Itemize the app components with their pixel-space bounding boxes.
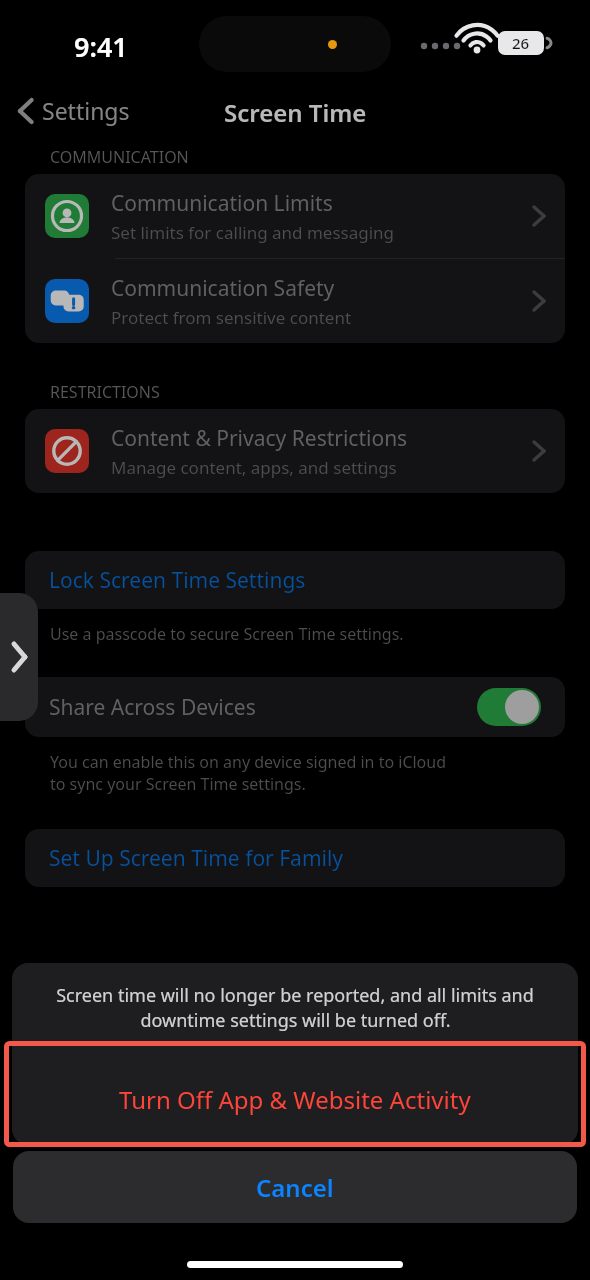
staticText: 9:41 [74,28,128,65]
staticText: downtime settings will be turned off. [140,1008,451,1033]
staticText: Communication Limits [111,189,333,218]
staticText: Settings [42,95,130,126]
staticText: Protect from sensitive content [111,306,352,329]
staticText: RESTRICTIONS [50,381,160,403]
staticText: You can enable this on any device signed… [50,751,447,773]
staticText: Communication Safety [111,274,335,303]
button[interactable]: Lock Screen Time Settings [25,551,565,609]
staticText: Set Up Screen Time for Family [49,844,344,873]
button[interactable]: Content & Privacy Restrictions [25,409,565,493]
button[interactable]: Share Across Devices [25,677,565,737]
button[interactable]: Set Up Screen Time for Family [25,829,565,887]
staticText: Share Across Devices [49,693,256,722]
staticText: Content & Privacy Restrictions [111,424,408,453]
staticText: 26 [512,33,530,53]
button[interactable]: Expand panel [0,593,38,721]
button[interactable]: Settings [12,91,136,130]
staticText: Manage content, apps, and settings [111,456,397,479]
button[interactable]: Cancel [13,1151,577,1223]
button[interactable]: Turn Off App & Website Activity [12,1053,578,1145]
staticText: Use a passcode to secure Screen Time set… [50,623,404,645]
staticText: to sync your Screen Time settings. [50,773,306,795]
staticText: Screen time will no longer be reported, … [56,983,534,1008]
staticText: Lock Screen Time Settings [49,566,306,595]
staticText: Set limits for calling and messaging [111,221,395,244]
staticText: Cancel [256,1171,334,1204]
staticText: COMMUNICATION [50,146,189,168]
button[interactable]: Communication Limits [25,174,565,258]
staticText: Screen Time [224,96,367,129]
button[interactable]: Share Across Devices toggle [477,688,541,726]
staticText: Turn Off App & Website Activity [119,1083,471,1116]
button[interactable]: Communication Safety [25,259,565,343]
